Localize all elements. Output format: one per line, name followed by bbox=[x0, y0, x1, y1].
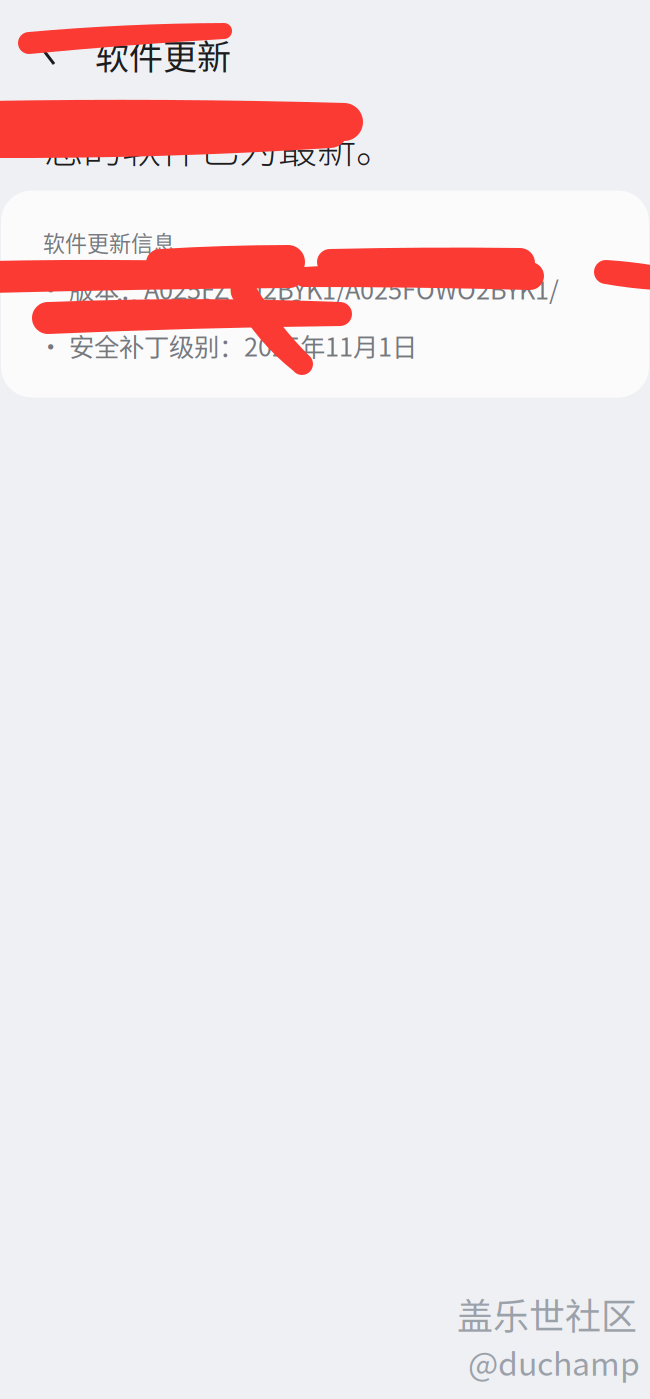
staticText: @duchamp bbox=[468, 1339, 640, 1385]
staticText: A025FZCU2BVA2 bbox=[112, 288, 304, 325]
button[interactable]: Back bbox=[0, 0, 66, 100]
staticText: 软件更新 bbox=[95, 30, 231, 79]
staticText: 盖乐世社区 bbox=[457, 1288, 637, 1340]
staticText: • 版本：A025FZCU2BYK1/A025FOWO2BYK1/ bbox=[38, 270, 559, 307]
staticText: • 安全补丁级别：2025年11月1日 bbox=[38, 327, 417, 364]
staticText: 您的软件已为最新。 bbox=[44, 117, 395, 174]
staticText: 软件更新信息 bbox=[43, 226, 175, 258]
